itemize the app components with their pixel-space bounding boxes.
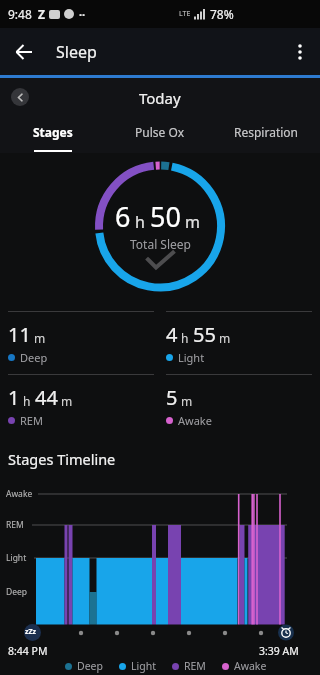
staticText: Deep (20, 350, 48, 365)
staticText: Light (178, 350, 205, 365)
staticText: 78% (210, 6, 234, 22)
staticText: REM (6, 519, 24, 531)
staticText: m (185, 211, 200, 233)
staticText: Deep (77, 659, 103, 673)
button[interactable] (11, 88, 29, 106)
staticText: Stages Timeline (8, 449, 116, 469)
staticText: 55 (193, 321, 216, 348)
staticText: 50 (150, 198, 181, 235)
staticText: LTE (179, 9, 191, 19)
staticText: Total Sleep (130, 236, 191, 252)
staticText: 5 (166, 384, 178, 411)
button[interactable]: Pulse Ox (106, 117, 213, 153)
staticText: 8:44 PM (8, 644, 48, 658)
staticText: m (181, 393, 193, 409)
staticText: Pulse Ox (135, 124, 185, 140)
staticText: 1 (8, 384, 20, 411)
staticText: Stages (33, 124, 73, 140)
staticText: m (61, 393, 73, 409)
staticText: h (135, 211, 145, 233)
button[interactable] (280, 28, 320, 75)
staticText: zZz (25, 627, 36, 637)
staticText: 6 (115, 198, 131, 235)
button[interactable]: 11 (8, 311, 154, 373)
staticText: 9:48 (8, 6, 32, 22)
staticText: m (219, 330, 231, 346)
staticText: ·· (79, 7, 86, 22)
staticText: h (181, 330, 189, 346)
staticText: Deep (6, 586, 28, 598)
staticText: Sleep (56, 41, 97, 63)
staticText: 44 (35, 384, 58, 411)
staticText: Awake (6, 488, 33, 500)
staticText: Respiration (234, 124, 299, 140)
staticText: Z (38, 6, 45, 22)
button[interactable]: Stages (0, 117, 106, 153)
button[interactable]: 4 (166, 311, 312, 373)
button[interactable]: Respiration (213, 117, 320, 153)
staticText: 3:39 AM (259, 644, 299, 658)
staticText: Light (131, 659, 156, 673)
staticText: Light (6, 552, 27, 564)
staticText: h (23, 393, 31, 409)
staticText: 4 (166, 321, 178, 348)
staticText: m (34, 330, 46, 346)
button[interactable]: 1 (8, 374, 154, 436)
staticText: Awake (178, 413, 212, 428)
staticText: REM (20, 413, 43, 428)
button[interactable] (0, 28, 47, 75)
button[interactable]: 5 (166, 374, 312, 436)
staticText: 11 (8, 321, 31, 348)
staticText: Today (139, 88, 181, 108)
staticText: REM (184, 659, 206, 673)
staticText: Awake (234, 659, 267, 673)
